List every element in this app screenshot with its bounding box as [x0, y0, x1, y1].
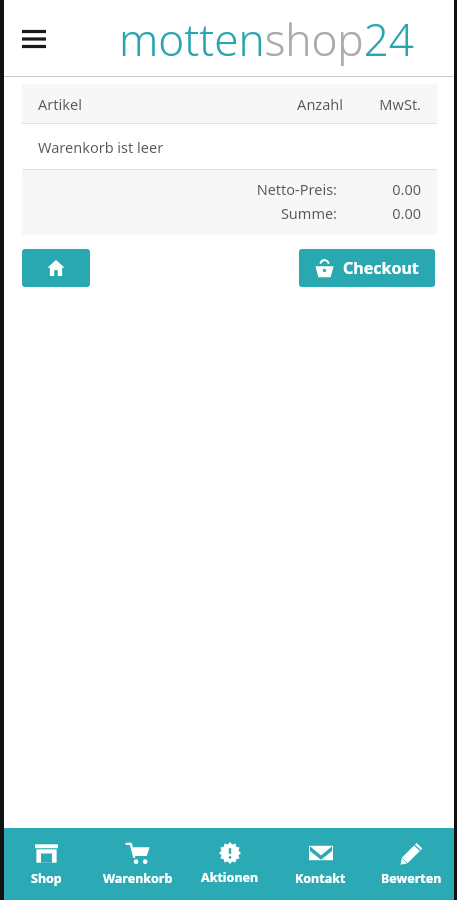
staticText: Aktionen — [201, 869, 259, 886]
button[interactable]: Menu — [12, 17, 56, 61]
staticText: Shop — [31, 870, 62, 887]
button[interactable]: Home — [22, 249, 90, 287]
button[interactable]: Bewerten — [366, 828, 457, 900]
staticText: Anzahl — [263, 94, 343, 114]
staticText: Warenkorb ist leer — [38, 137, 164, 157]
staticText: Checkout — [343, 257, 419, 279]
button[interactable]: Shop — [0, 828, 92, 900]
staticText: Warenkorb — [103, 870, 173, 887]
staticText: Summe: — [22, 203, 337, 223]
button[interactable]: Warenkorb — [92, 828, 184, 900]
button[interactable]: Kontakt — [275, 828, 366, 900]
button[interactable]: Checkout — [299, 249, 435, 287]
staticText: MwSt. — [361, 94, 421, 114]
staticText: Artikel — [38, 94, 263, 114]
staticText: 0.00 — [359, 203, 421, 223]
button[interactable]: Aktionen — [184, 828, 275, 900]
staticText: Bewerten — [381, 870, 442, 887]
staticText: 0.00 — [359, 179, 421, 199]
staticText: mottenshop24 — [119, 9, 414, 69]
staticText: Netto-Preis: — [22, 179, 337, 199]
staticText: Kontakt — [295, 870, 346, 887]
